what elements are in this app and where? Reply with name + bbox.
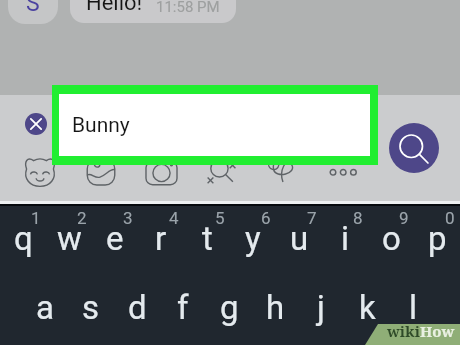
button[interactable]: 9 [368,208,414,268]
staticText: p [428,219,447,258]
button[interactable]: Bunny [52,85,378,165]
staticText: j [317,288,325,327]
staticText: s [82,288,100,327]
button[interactable]: 5 [184,208,230,268]
button[interactable]: k [344,277,390,337]
staticText: 1 [31,208,41,228]
staticText: h [266,288,285,327]
button[interactable]: 6 [230,208,276,268]
button[interactable]: 0 [414,208,460,268]
button[interactable]: Cat stickers [24,157,56,187]
button[interactable]: Search stickers [206,157,238,187]
staticText: 5 [215,208,225,228]
staticText: 11:58 PM [156,0,220,16]
button[interactable]: j [298,277,344,337]
button[interactable]: h [252,277,298,337]
button[interactable]: More options [328,155,360,179]
button[interactable]: Stickers [85,158,117,187]
button[interactable]: 3 [92,208,138,268]
staticText: 4 [169,208,179,228]
staticText: k [359,288,376,327]
staticText: w [57,219,82,258]
button[interactable]: Search [389,123,439,173]
button[interactable]: d [114,277,160,337]
staticText: o [382,219,401,258]
button[interactable]: l [390,277,436,337]
button[interactable]: a [22,277,68,337]
staticText: 0 [445,208,455,228]
staticText: y [245,219,261,258]
staticText: e [106,219,124,258]
button[interactable]: Handwriting [266,158,298,186]
button[interactable]: s [68,277,114,337]
staticText: Bunny [72,113,130,138]
button[interactable]: Close search [25,113,47,135]
staticText: 2 [77,208,87,228]
staticText: Hello! [86,0,143,16]
button[interactable]: g [206,277,252,337]
staticText: d [128,288,147,327]
staticText: t [202,219,213,258]
staticText: How [420,321,455,341]
staticText: l [409,288,418,327]
staticText: r [155,219,167,258]
staticText: g [220,288,239,327]
staticText: f [177,288,189,327]
button[interactable]: 1 [0,208,46,268]
staticText: wiki [387,321,420,341]
staticText: a [36,288,54,327]
button[interactable]: 2 [46,208,92,268]
staticText: S [26,0,40,17]
staticText: 8 [353,208,363,228]
staticText: q [14,219,33,258]
staticText: 9 [399,208,409,228]
staticText: i [341,219,350,258]
staticText: 6 [261,208,271,228]
button[interactable]: Camera [145,159,178,187]
button[interactable]: Contact avatar [8,0,58,24]
staticText: 3 [123,208,133,228]
button[interactable]: 4 [138,208,184,268]
button[interactable]: f [160,277,206,337]
button[interactable]: 8 [322,208,368,268]
staticText: u [290,219,309,258]
staticText: 7 [307,208,317,228]
button[interactable]: 7 [276,208,322,268]
